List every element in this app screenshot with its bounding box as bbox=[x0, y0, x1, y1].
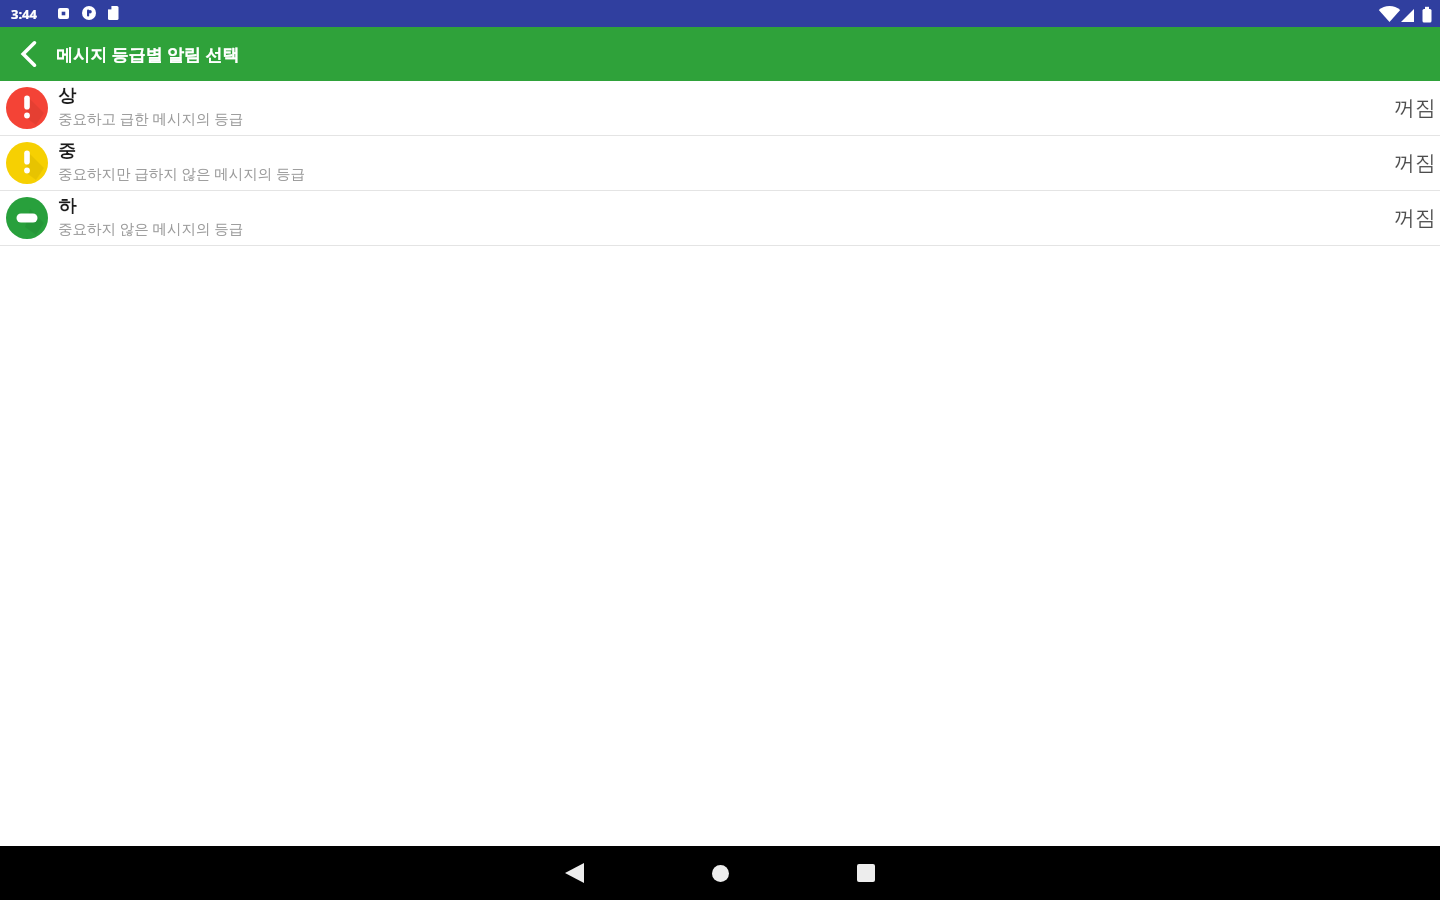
staticText: 중요하고 급한 메시지의 등급 bbox=[58, 108, 244, 128]
button[interactable] bbox=[519, 846, 629, 900]
staticText: 상 bbox=[58, 85, 76, 108]
staticText: 중요하지만 급하지 않은 메시지의 등급 bbox=[58, 163, 306, 183]
button[interactable]: 상 bbox=[0, 81, 1440, 135]
staticText: 꺼짐 bbox=[1394, 95, 1436, 121]
staticText: 중요하지 않은 메시지의 등급 bbox=[58, 218, 244, 238]
staticText: 꺼짐 bbox=[1394, 205, 1436, 231]
staticText: 중 bbox=[58, 140, 76, 163]
button[interactable]: 중 bbox=[0, 136, 1440, 190]
staticText: 하 bbox=[58, 195, 76, 218]
staticText: 꺼짐 bbox=[1394, 150, 1436, 176]
staticText: 메시지 등급별 알림 선택 bbox=[56, 43, 240, 66]
button[interactable] bbox=[0, 27, 56, 81]
button[interactable] bbox=[665, 846, 775, 900]
button[interactable] bbox=[811, 846, 921, 900]
staticText: 3:44 bbox=[11, 5, 37, 23]
button[interactable]: 하 bbox=[0, 191, 1440, 245]
